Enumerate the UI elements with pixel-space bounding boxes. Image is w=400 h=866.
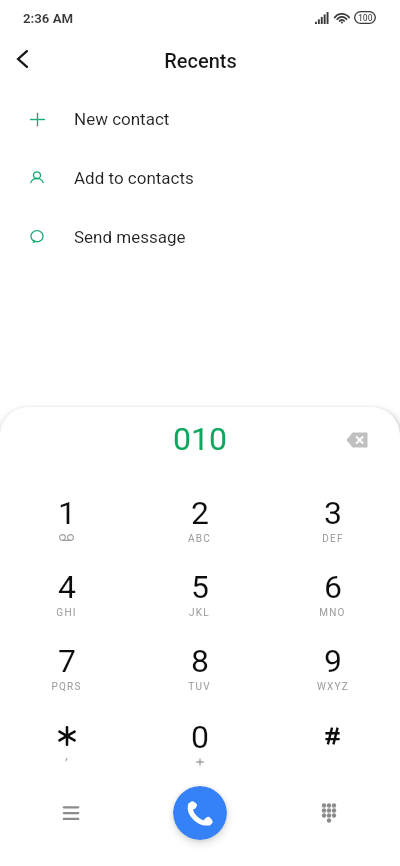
button[interactable]: Add to contacts <box>0 154 400 202</box>
button[interactable]: Back <box>0 36 45 82</box>
staticText: ABC <box>188 533 211 545</box>
button[interactable]: 5 <box>133 568 266 638</box>
button[interactable]: 0 <box>133 718 266 788</box>
staticText: MNO <box>319 607 346 619</box>
button[interactable]: Send message <box>0 213 400 261</box>
button[interactable]: Backspace <box>336 419 378 461</box>
staticText: 100 <box>358 13 373 23</box>
staticText: 6 <box>324 568 342 606</box>
button[interactable]: New contact <box>0 95 400 143</box>
staticText: 0 <box>191 718 209 756</box>
staticText: 4 <box>58 568 76 606</box>
staticText: New contact <box>74 109 170 129</box>
staticText: 1 <box>58 494 76 532</box>
staticText: JKL <box>189 607 210 619</box>
button[interactable]: Call <box>173 786 227 840</box>
button[interactable]: 1 <box>0 494 133 564</box>
staticText: 7 <box>58 642 76 680</box>
button[interactable]: 3 <box>266 494 399 564</box>
button[interactable]: 9 <box>266 642 399 712</box>
staticText: GHI <box>56 607 77 619</box>
button[interactable]: 8 <box>133 642 266 712</box>
button[interactable]: 4 <box>0 568 133 638</box>
staticText: WXYZ <box>317 681 349 693</box>
staticText: 9 <box>324 642 342 680</box>
button[interactable] <box>0 718 133 788</box>
staticText: DEF <box>322 533 344 545</box>
button[interactable]: 7 <box>0 642 133 712</box>
button[interactable] <box>266 718 399 788</box>
staticText: TUV <box>188 681 211 693</box>
button[interactable]: 6 <box>266 568 399 638</box>
button[interactable]: 2 <box>133 494 266 564</box>
staticText: Recents <box>164 49 237 72</box>
staticText: Add to contacts <box>74 168 194 188</box>
staticText: 3 <box>324 494 342 532</box>
staticText: PQRS <box>51 681 82 693</box>
staticText: 2 <box>191 494 209 532</box>
button[interactable]: Dialpad <box>305 789 353 837</box>
staticText: 5 <box>191 568 209 606</box>
button[interactable]: Menu <box>47 789 95 837</box>
staticText: Send message <box>74 227 186 247</box>
staticText: 2:36 AM <box>23 11 74 26</box>
staticText: 010 <box>173 420 227 458</box>
staticText: 8 <box>191 642 209 680</box>
